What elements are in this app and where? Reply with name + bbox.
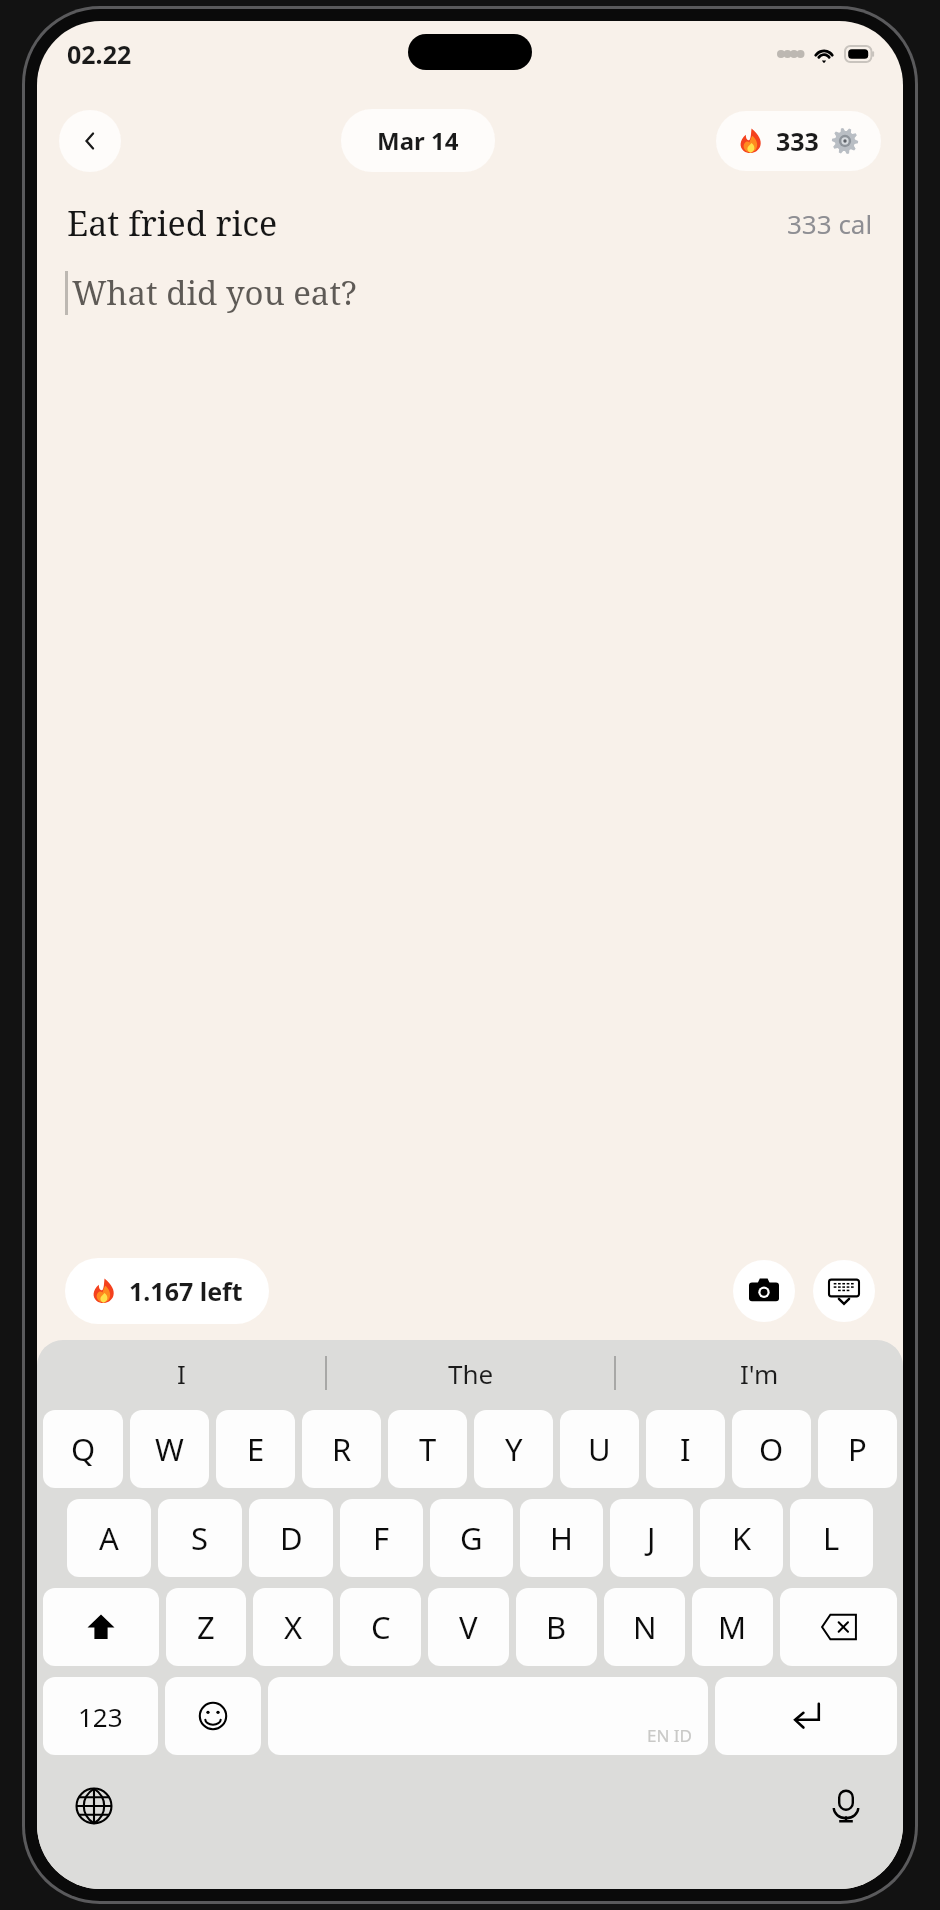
staticText: I bbox=[177, 1356, 186, 1391]
staticText: Eat fried rice bbox=[67, 200, 278, 246]
button[interactable]: 1.167 left bbox=[65, 1258, 269, 1324]
button[interactable]: Back bbox=[59, 110, 121, 172]
staticText: U bbox=[588, 1428, 611, 1470]
staticText: Q bbox=[71, 1428, 96, 1470]
staticText: J bbox=[647, 1517, 656, 1559]
button[interactable]: M bbox=[692, 1588, 773, 1666]
button[interactable]: A bbox=[67, 1499, 151, 1577]
button[interactable]: 123 bbox=[43, 1677, 158, 1755]
staticText: Y bbox=[505, 1428, 523, 1470]
staticText: 333 cal bbox=[787, 206, 873, 241]
staticText: 1.167 left bbox=[129, 1274, 243, 1308]
button[interactable]: O bbox=[732, 1410, 811, 1488]
staticText: N bbox=[633, 1606, 657, 1648]
button[interactable]: D bbox=[249, 1499, 333, 1577]
button[interactable]: N bbox=[604, 1588, 685, 1666]
staticText: B bbox=[546, 1606, 567, 1648]
button[interactable]: Enter bbox=[715, 1677, 897, 1755]
button[interactable]: E bbox=[216, 1410, 295, 1488]
button[interactable]: Z bbox=[166, 1588, 246, 1666]
staticText: G bbox=[460, 1517, 483, 1559]
staticText: K bbox=[732, 1517, 752, 1559]
button[interactable]: Emoji bbox=[165, 1677, 261, 1755]
button[interactable]: K bbox=[700, 1499, 783, 1577]
button[interactable]: G bbox=[430, 1499, 513, 1577]
staticText: X bbox=[284, 1606, 303, 1648]
button[interactable]: I bbox=[646, 1410, 725, 1488]
button[interactable]: Hide keyboard bbox=[813, 1260, 875, 1322]
staticText: I'm bbox=[740, 1356, 779, 1391]
button[interactable]: Mar 14 bbox=[341, 109, 495, 172]
button[interactable]: R bbox=[302, 1410, 381, 1488]
staticText: The bbox=[448, 1356, 494, 1391]
button[interactable]: X bbox=[253, 1588, 333, 1666]
button[interactable]: U bbox=[560, 1410, 639, 1488]
button[interactable]: I bbox=[37, 1340, 325, 1406]
staticText: I bbox=[680, 1428, 691, 1470]
button[interactable]: Camera bbox=[733, 1260, 795, 1322]
staticText: What did you eat? bbox=[72, 270, 357, 315]
button[interactable]: Backspace bbox=[780, 1588, 897, 1666]
button[interactable]: S bbox=[158, 1499, 242, 1577]
staticText: T bbox=[419, 1428, 437, 1470]
button[interactable]: C bbox=[340, 1588, 421, 1666]
button[interactable]: Space bbox=[268, 1677, 708, 1755]
staticText: EN ID bbox=[647, 1724, 692, 1747]
staticText: V bbox=[459, 1606, 478, 1648]
staticText: 123 bbox=[78, 1699, 123, 1734]
button[interactable]: Y bbox=[474, 1410, 553, 1488]
staticText: W bbox=[155, 1428, 184, 1470]
button[interactable]: P bbox=[818, 1410, 897, 1488]
staticText: 02.22 bbox=[67, 37, 132, 71]
button[interactable]: W bbox=[130, 1410, 209, 1488]
button[interactable]: Voice input bbox=[817, 1777, 875, 1835]
staticText: H bbox=[550, 1517, 573, 1559]
button[interactable]: B bbox=[516, 1588, 597, 1666]
button[interactable]: V bbox=[428, 1588, 509, 1666]
button[interactable]: The bbox=[327, 1340, 614, 1406]
button[interactable]: H bbox=[520, 1499, 603, 1577]
staticText: Mar 14 bbox=[377, 124, 459, 157]
staticText: D bbox=[280, 1517, 303, 1559]
staticText: M bbox=[718, 1606, 747, 1648]
staticText: F bbox=[373, 1517, 390, 1559]
button[interactable]: L bbox=[790, 1499, 873, 1577]
staticText: S bbox=[191, 1517, 209, 1559]
staticText: C bbox=[371, 1606, 391, 1648]
staticText: E bbox=[247, 1428, 265, 1470]
staticText: Z bbox=[197, 1606, 215, 1648]
button[interactable]: F bbox=[340, 1499, 423, 1577]
button[interactable]: I'm bbox=[616, 1340, 903, 1406]
button[interactable]: Change language bbox=[65, 1777, 123, 1835]
button[interactable]: 333 bbox=[716, 111, 881, 171]
staticText: O bbox=[759, 1428, 784, 1470]
button[interactable]: Q bbox=[43, 1410, 123, 1488]
staticText: A bbox=[99, 1517, 119, 1559]
button[interactable]: Shift bbox=[43, 1588, 159, 1666]
button[interactable]: J bbox=[610, 1499, 693, 1577]
staticText: R bbox=[332, 1428, 352, 1470]
button[interactable]: T bbox=[388, 1410, 467, 1488]
staticText: P bbox=[848, 1428, 867, 1470]
staticText: 333 bbox=[776, 124, 819, 158]
staticText: L bbox=[823, 1517, 840, 1559]
